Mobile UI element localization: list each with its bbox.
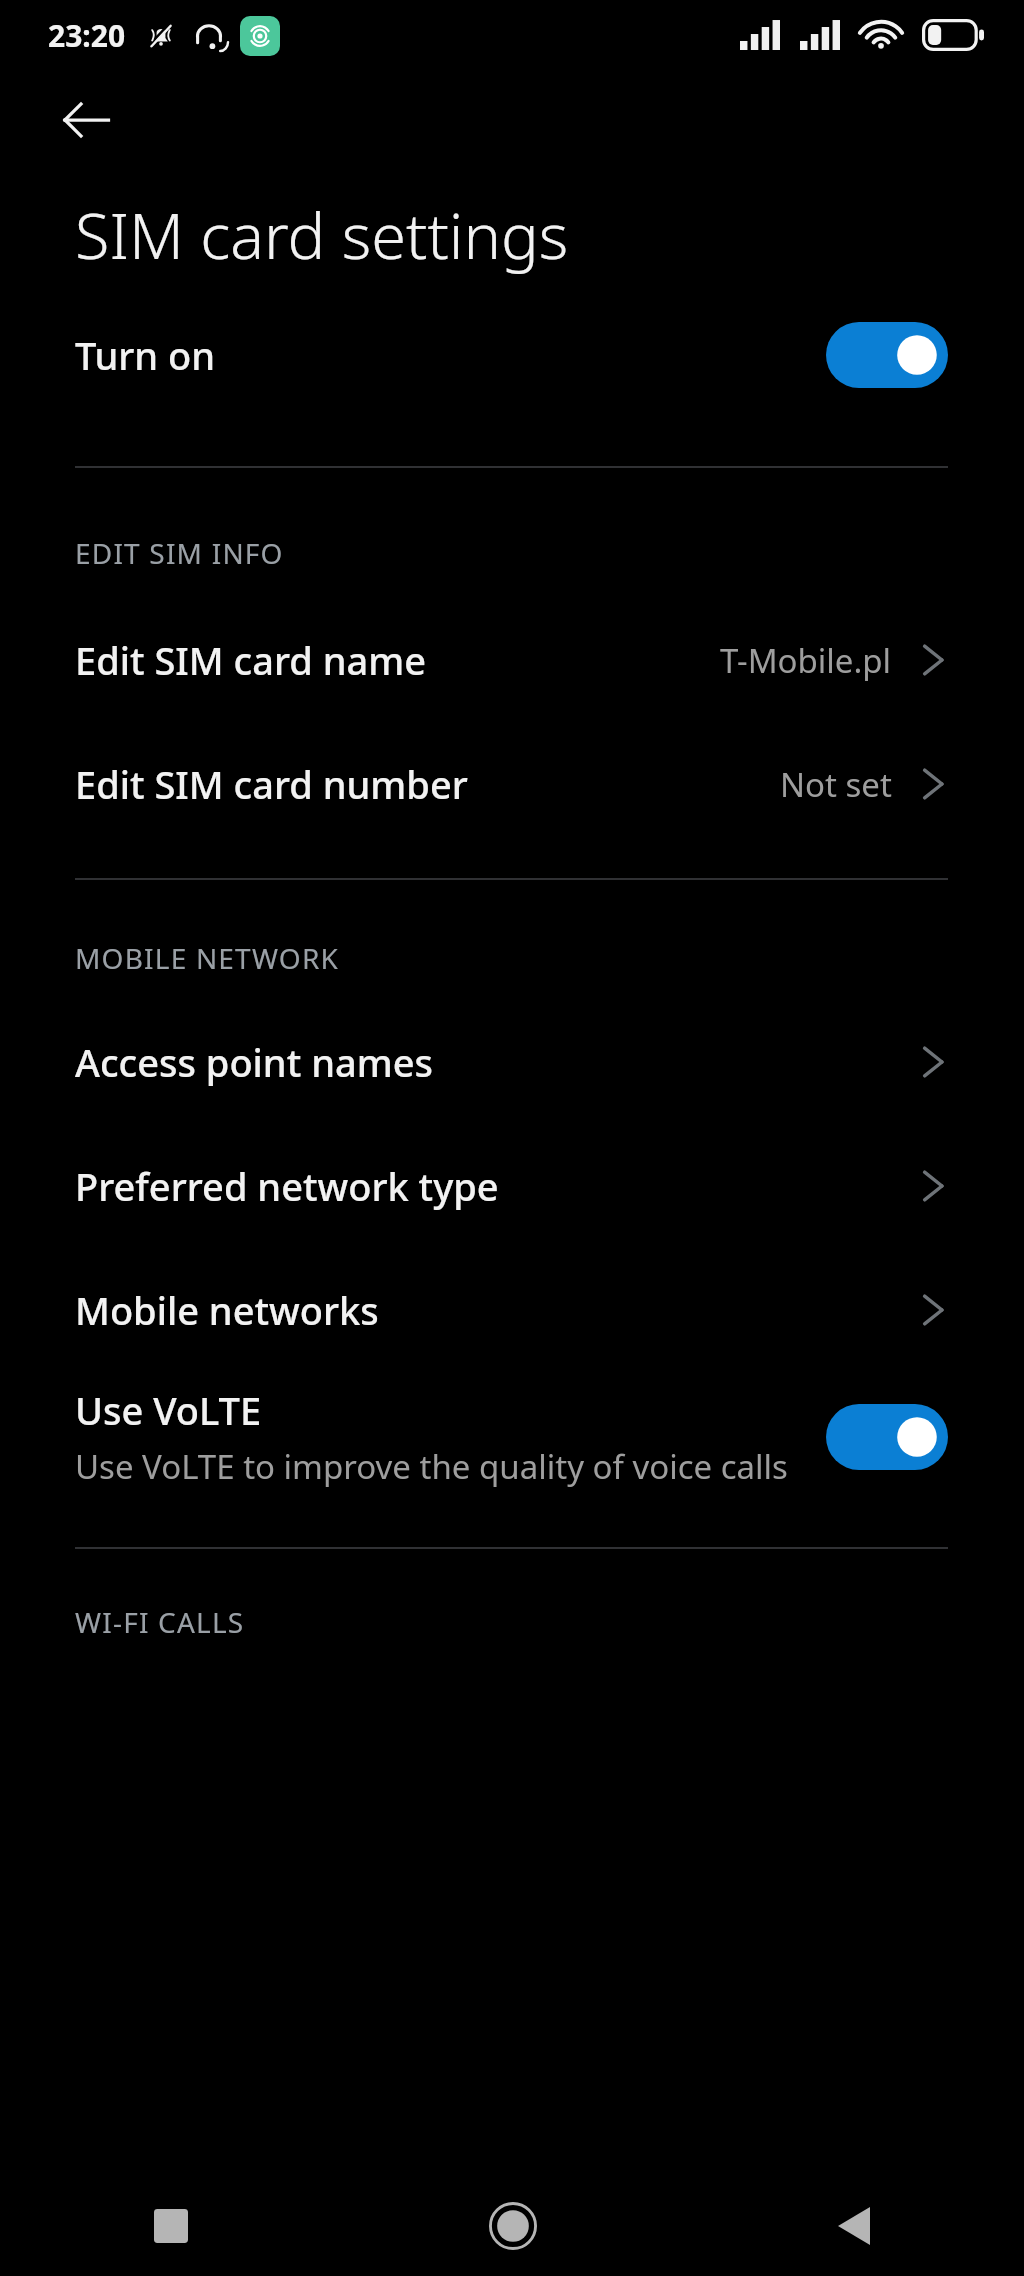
staticText: T-Mobile.pl <box>720 638 892 683</box>
staticText: SIM card settings <box>75 192 569 278</box>
staticText: Preferred network type <box>75 1160 918 1212</box>
staticText: Edit SIM card name <box>75 634 720 686</box>
staticText: Use VoLTE <box>75 1384 262 1436</box>
staticText: Edit SIM card number <box>75 758 780 810</box>
staticText: MOBILE NETWORK <box>75 939 340 977</box>
staticText: Use VoLTE to improve the quality of voic… <box>75 1444 788 1489</box>
button[interactable]: Mobile networks <box>0 1278 1024 1342</box>
button[interactable]: Recents <box>0 2176 342 2276</box>
staticText: 23:20 <box>48 15 126 56</box>
staticText: Turn on <box>75 329 826 381</box>
button[interactable]: Home <box>342 2176 683 2276</box>
staticText: Mobile networks <box>75 1284 918 1336</box>
button[interactable]: Turn on <box>0 300 1024 410</box>
staticText: Not set <box>780 762 892 807</box>
staticText: WI-FI CALLS <box>75 1603 245 1641</box>
button[interactable]: Edit SIM card name <box>0 628 1024 692</box>
button[interactable]: Back <box>683 2176 1024 2276</box>
staticText: EDIT SIM INFO <box>75 534 284 572</box>
button[interactable]: Back <box>50 84 122 156</box>
staticText: Access point names <box>75 1036 918 1088</box>
button[interactable]: Preferred network type <box>0 1154 1024 1218</box>
button[interactable]: Edit SIM card number <box>0 752 1024 816</box>
button[interactable]: Access point names <box>0 1030 1024 1094</box>
button[interactable]: Use VoLTE <box>0 1384 1024 1489</box>
